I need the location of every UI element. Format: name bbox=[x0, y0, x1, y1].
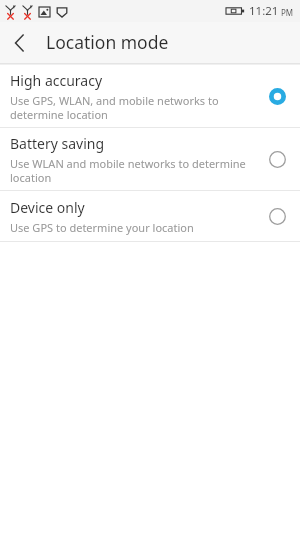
staticText: 11:21 bbox=[249, 3, 279, 19]
staticText: Location mode bbox=[46, 30, 169, 54]
button[interactable]: Battery saving bbox=[264, 146, 290, 172]
button[interactable]: Device only bbox=[264, 203, 290, 229]
button[interactable]: High accuracy selected bbox=[264, 83, 290, 109]
staticText: Battery saving bbox=[10, 134, 105, 153]
staticText: Use GPS to determine your location bbox=[10, 220, 253, 235]
staticText: Use WLAN and mobile networks to determin… bbox=[10, 156, 253, 185]
button[interactable]: Battery saving bbox=[0, 128, 300, 190]
staticText: Device only bbox=[10, 198, 85, 217]
button[interactable]: Navigate up bbox=[0, 23, 40, 63]
staticText: High accuracy bbox=[10, 71, 103, 90]
staticText: Use GPS, WLAN, and mobile networks to de… bbox=[10, 93, 253, 122]
button[interactable]: High accuracy bbox=[0, 65, 300, 127]
staticText: PM bbox=[281, 7, 294, 18]
button[interactable]: Device only bbox=[0, 191, 300, 241]
